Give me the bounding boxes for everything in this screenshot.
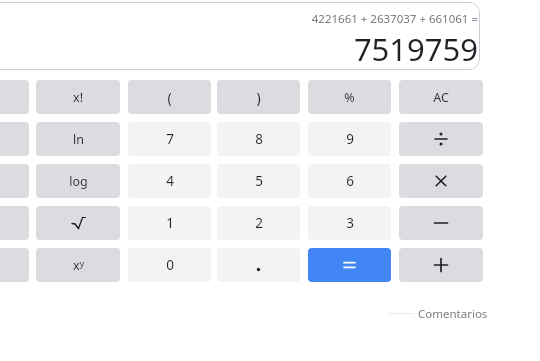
button[interactable]: 0 (128, 248, 211, 282)
staticText: 3 (346, 214, 354, 232)
staticText: ( (167, 88, 172, 107)
button[interactable]: Plus (399, 248, 483, 282)
staticText: ln (73, 131, 84, 148)
button[interactable]: % (308, 80, 391, 114)
button[interactable]: x! (36, 80, 120, 114)
staticText: 2 (255, 214, 263, 232)
button[interactable]: 4 (128, 164, 211, 198)
staticText: 8 (255, 130, 263, 148)
button[interactable]: Square root (36, 206, 120, 240)
staticText: AC (433, 89, 449, 106)
button[interactable]: 1 (128, 206, 211, 240)
staticText: x! (73, 89, 83, 106)
button[interactable]: Minus (399, 206, 483, 240)
button[interactable]: xy (36, 248, 120, 282)
button[interactable]: Multiply (399, 164, 483, 198)
button[interactable]: log (36, 164, 120, 198)
staticText: 4221661 + 2637037 + 661061 = (311, 11, 478, 27)
staticText: ) (256, 88, 261, 107)
button[interactable]: 5 (217, 164, 300, 198)
staticText: Comentarios (418, 306, 488, 322)
button[interactable]: ) (217, 80, 300, 114)
button[interactable]: AC (399, 80, 483, 114)
staticText: 1 (166, 214, 174, 232)
staticText: 9 (346, 130, 354, 148)
staticText: xy (73, 257, 84, 274)
staticText: % (344, 89, 355, 106)
button[interactable]: ln (36, 122, 120, 156)
button[interactable]: 7 (128, 122, 211, 156)
button[interactable] (0, 2, 480, 70)
button[interactable]: ( (128, 80, 211, 114)
staticText: 7 (166, 130, 174, 148)
button[interactable]: 3 (308, 206, 391, 240)
staticText: log (69, 173, 88, 190)
staticText: 7519759 (353, 28, 478, 66)
staticText: 6 (346, 172, 354, 190)
staticText: 4 (166, 172, 174, 190)
button[interactable]: Divide (399, 122, 483, 156)
button[interactable]: 2 (217, 206, 300, 240)
staticText: 5 (255, 172, 263, 190)
button[interactable]: Decimal point (217, 248, 300, 282)
button[interactable]: Equals (308, 248, 391, 282)
button[interactable]: Comentarios (418, 304, 488, 324)
button[interactable]: 6 (308, 164, 391, 198)
staticText: 0 (166, 256, 174, 274)
button[interactable]: 9 (308, 122, 391, 156)
button[interactable]: 8 (217, 122, 300, 156)
